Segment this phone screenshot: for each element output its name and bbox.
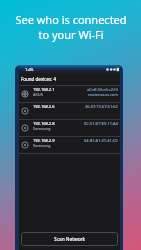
button[interactable]: 192.168.2.9 [19,137,120,153]
staticText: Found devices: 4 [21,76,57,82]
staticText: 1:45 [25,67,34,73]
staticText: Samsung [33,126,51,131]
staticText: Scan Network [54,236,86,243]
staticText: 192.168.2.1 [33,87,55,92]
staticText: 192.168.2.8 [33,121,55,126]
staticText: router.asus.com [88,92,118,97]
staticText: 5C:51:D7:E5:11:A4 [84,121,118,126]
staticText: a0:df:33:e6:c2:f3 [87,87,118,92]
staticText: 36:07:73:67:61:62 [85,104,118,109]
staticText: Samsung [33,143,51,148]
staticText: 192.168.2.6 [33,104,55,109]
staticText: 04:B1:A1:21:41:C0 [84,138,118,143]
staticText: 192.168.2.9 [33,138,55,143]
staticText: See who is connected [15,12,127,27]
button[interactable]: 192.168.2.6 [19,103,120,119]
staticText: to your Wi-Fi [38,27,104,42]
staticText: ASUS [33,92,43,97]
button[interactable]: 192.168.2.8 [19,120,120,136]
button[interactable]: 192.168.2.1 [19,86,120,102]
button[interactable]: Scan Network [21,232,118,246]
